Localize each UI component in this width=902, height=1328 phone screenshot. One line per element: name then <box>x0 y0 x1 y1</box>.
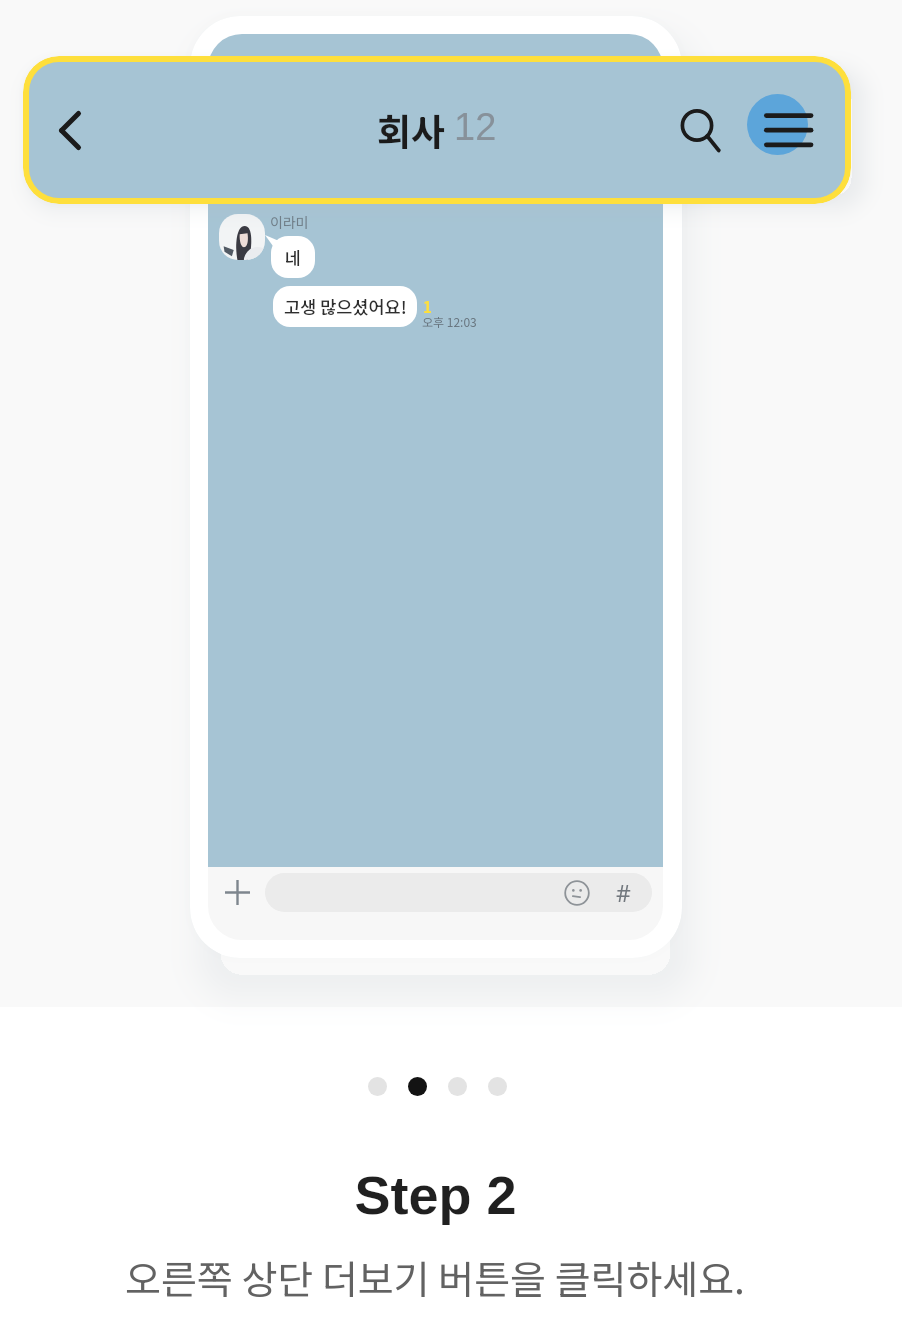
staticText: 이라미 <box>270 212 309 232</box>
button[interactable]: Menu <box>747 94 808 155</box>
button[interactable] <box>408 1077 427 1096</box>
button[interactable] <box>368 1077 387 1096</box>
staticText: 고생 많으셨어요! <box>284 294 407 319</box>
button[interactable]: Back <box>43 103 97 157</box>
staticText: 회사 <box>377 103 446 151</box>
button[interactable] <box>448 1077 467 1096</box>
button[interactable]: Search <box>673 103 729 159</box>
button[interactable] <box>488 1077 507 1096</box>
staticText: 네 <box>285 245 302 270</box>
staticText: 1 <box>423 296 432 318</box>
staticText: Step 2 <box>354 1165 517 1225</box>
staticText: # <box>616 877 631 907</box>
staticText: 오른쪽 상단 더보기 버튼을 클릭하세요. <box>125 1249 745 1305</box>
staticText: 오후 12:03 <box>422 313 477 330</box>
staticText: 12 <box>454 106 497 148</box>
